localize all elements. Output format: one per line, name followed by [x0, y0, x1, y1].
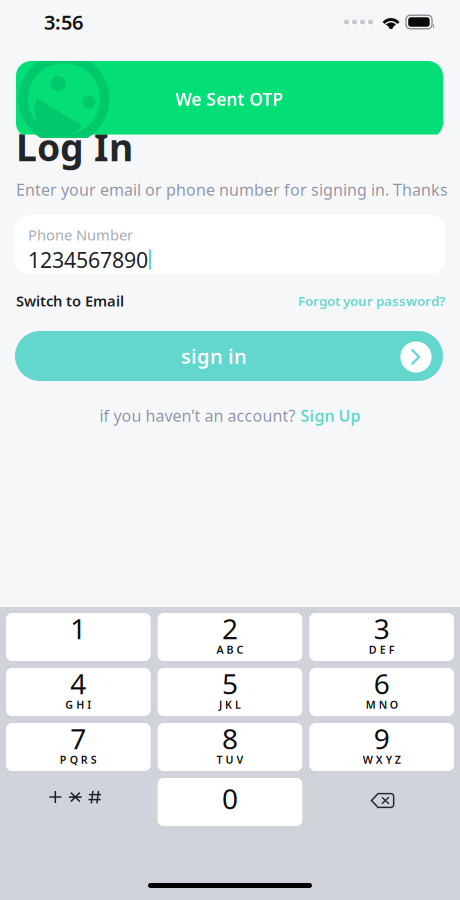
staticText: 1: [70, 610, 86, 647]
button[interactable]: 7: [6, 723, 151, 771]
staticText: 1234567890: [28, 245, 148, 274]
staticText: G: [65, 697, 73, 712]
staticText: Y: [386, 752, 392, 767]
button[interactable]: Switch to Email: [16, 291, 124, 310]
staticText: Z: [395, 752, 401, 767]
staticText: sign in: [181, 343, 247, 369]
staticText: K: [225, 697, 232, 712]
staticText: 3:56: [44, 9, 83, 35]
button[interactable]: 3: [309, 613, 454, 661]
staticText: F: [389, 642, 395, 657]
button[interactable]: 9: [309, 723, 454, 771]
staticText: L: [235, 697, 241, 712]
staticText: D: [369, 642, 377, 657]
staticText: 4: [70, 665, 86, 702]
staticText: X: [376, 752, 383, 767]
button[interactable]: Sign Up: [300, 405, 360, 426]
button[interactable]: sign in: [15, 331, 443, 381]
staticText: We Sent OTP: [175, 87, 283, 110]
staticText: B: [226, 642, 233, 657]
staticText: Enter your email or phone number for sig…: [16, 179, 448, 200]
staticText: E: [380, 642, 386, 657]
staticText: 6: [374, 665, 390, 702]
staticText: W: [363, 752, 373, 767]
button[interactable]: 4: [6, 668, 151, 716]
staticText: A: [216, 642, 223, 657]
staticText: Phone Number: [28, 225, 133, 244]
staticText: 9: [374, 720, 390, 757]
staticText: Switch to Email: [16, 291, 124, 310]
staticText: 5: [222, 665, 238, 702]
button[interactable]: 2: [158, 613, 302, 661]
staticText: 8: [222, 720, 238, 757]
staticText: J: [219, 697, 222, 712]
button[interactable]: 8: [158, 723, 302, 771]
staticText: Forgot your password?: [298, 292, 445, 310]
button[interactable]: 6: [309, 668, 454, 716]
staticText: 7: [70, 720, 86, 757]
staticText: S: [91, 752, 97, 767]
button[interactable]: Delete: [309, 778, 454, 826]
button[interactable]: 5: [158, 668, 302, 716]
staticText: H: [76, 697, 84, 712]
button[interactable]: Forgot your password?: [298, 292, 445, 310]
staticText: 3: [374, 610, 390, 647]
staticText: I: [87, 697, 91, 712]
staticText: V: [236, 752, 243, 767]
staticText: N: [379, 697, 387, 712]
button[interactable]: 1: [6, 613, 151, 661]
staticText: Q: [70, 752, 78, 767]
staticText: 0: [222, 780, 238, 817]
staticText: Log In: [16, 122, 133, 172]
staticText: O: [390, 697, 398, 712]
staticText: T: [216, 752, 222, 767]
staticText: Sign Up: [300, 405, 360, 426]
staticText: if you haven’t an account?: [99, 405, 295, 426]
button[interactable]: Symbols: [6, 778, 151, 826]
staticText: R: [81, 752, 88, 767]
button[interactable]: 0: [158, 778, 302, 826]
staticText: C: [236, 642, 243, 657]
staticText: P: [60, 752, 67, 767]
staticText: U: [225, 752, 233, 767]
staticText: M: [366, 697, 376, 712]
staticText: 2: [222, 610, 238, 647]
